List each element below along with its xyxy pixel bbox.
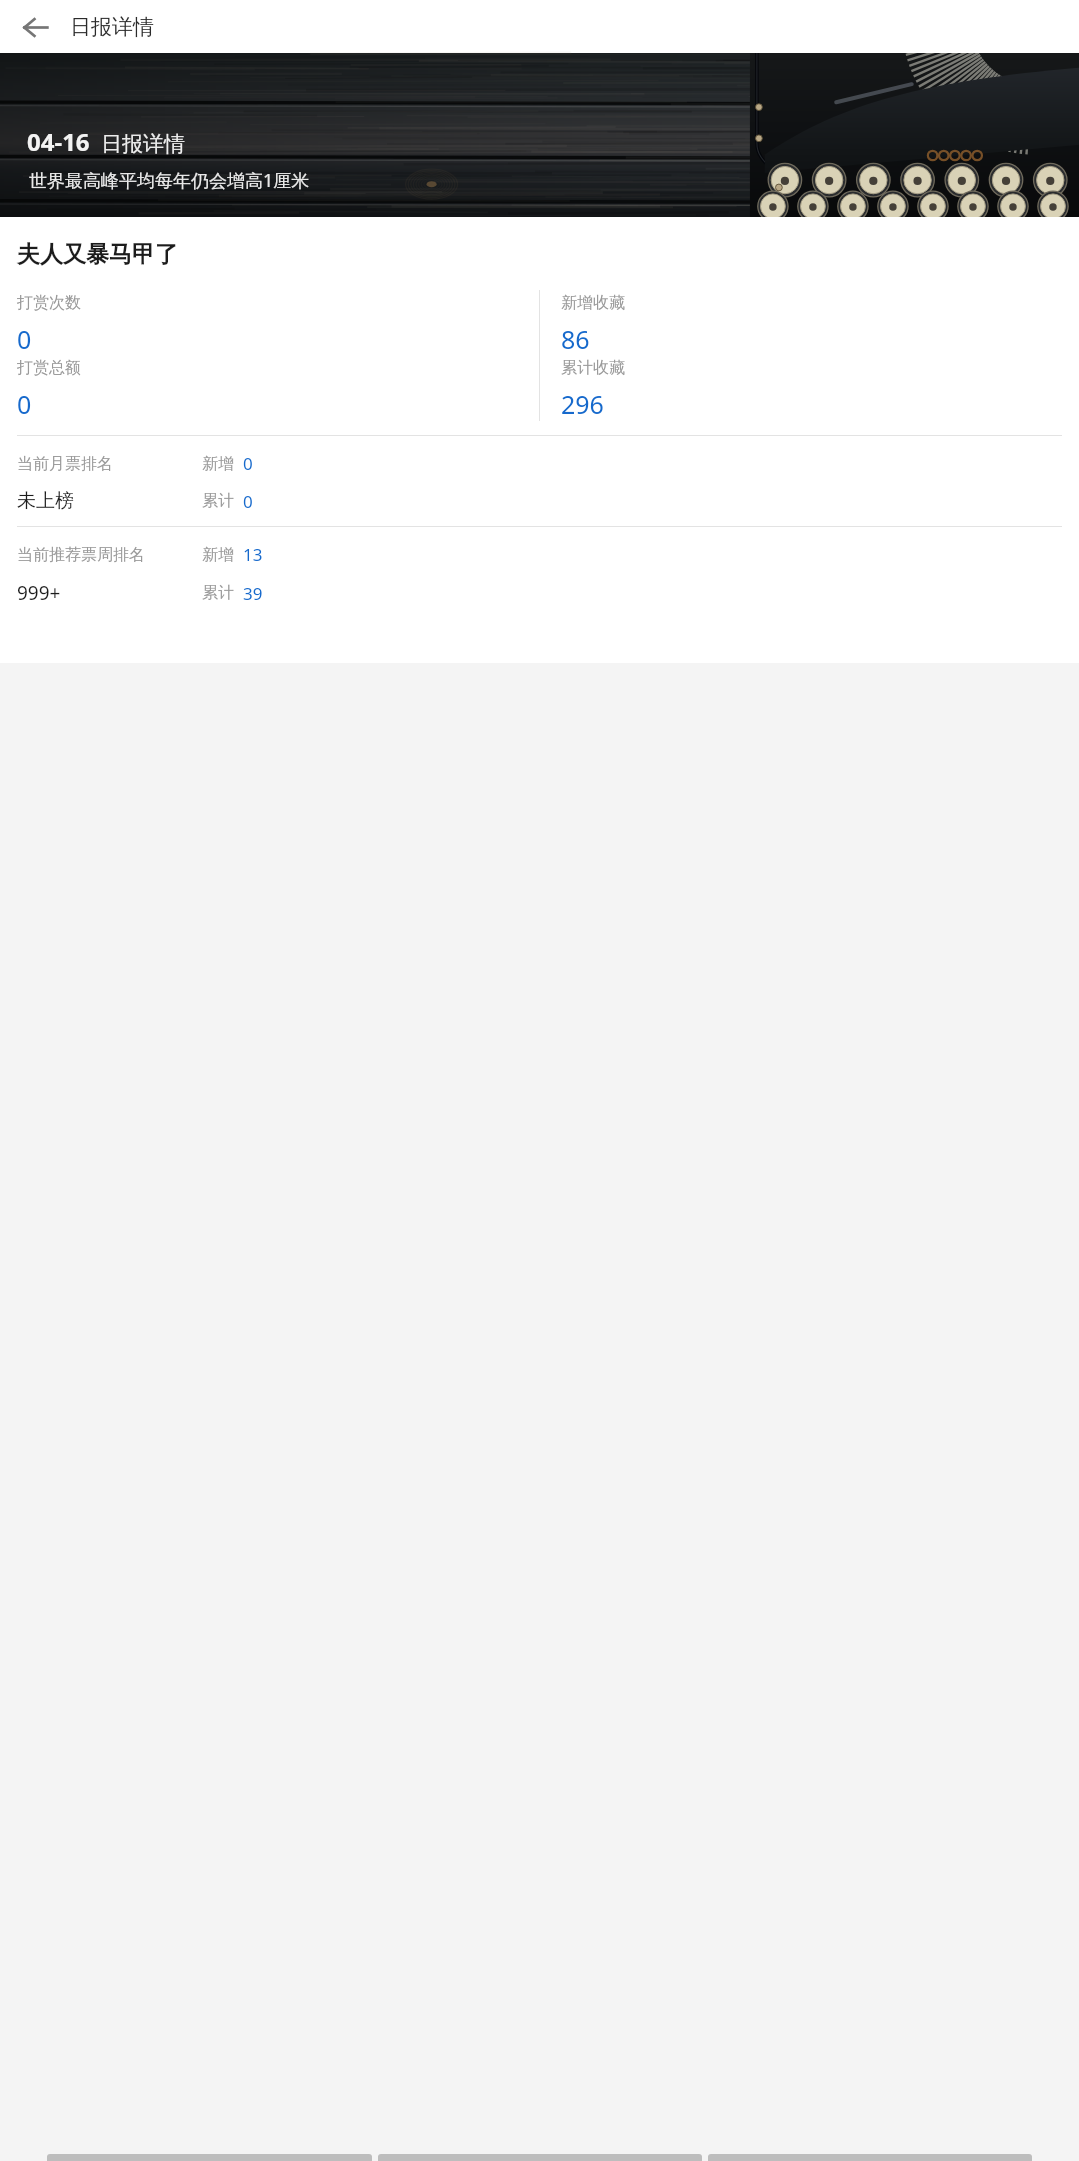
staticText: 04-16 bbox=[27, 125, 90, 158]
staticText: 累计 bbox=[202, 583, 234, 603]
staticText: 13 bbox=[243, 543, 263, 566]
staticText: 当前推荐票周排名 bbox=[17, 545, 202, 565]
staticText: 打赏次数 bbox=[17, 293, 81, 313]
button[interactable]: 当前推荐票周排名 bbox=[0, 527, 1079, 619]
staticText: 999+ bbox=[17, 580, 202, 606]
staticText: 新增 bbox=[202, 545, 234, 565]
staticText: 未上榜 bbox=[17, 489, 202, 513]
button[interactable]: 新增收藏 bbox=[540, 290, 1079, 355]
staticText: 新增收藏 bbox=[561, 293, 625, 313]
staticText: 296 bbox=[561, 387, 604, 421]
button[interactable]: 累计收藏 bbox=[540, 355, 1079, 421]
staticText: 累计收藏 bbox=[561, 358, 625, 378]
staticText: 86 bbox=[561, 322, 590, 355]
staticText: 日报详情 bbox=[70, 14, 154, 40]
staticText: 日报详情 bbox=[101, 131, 185, 157]
staticText: 打赏总额 bbox=[17, 358, 81, 378]
staticText: 累计 bbox=[202, 491, 234, 511]
staticText: 0 bbox=[243, 452, 253, 475]
button[interactable]: 当前月票排名 bbox=[0, 436, 1079, 526]
staticText: 新增 bbox=[202, 454, 234, 474]
button[interactable]: 打赏总额 bbox=[0, 355, 539, 421]
staticText: 当前月票排名 bbox=[17, 454, 202, 474]
staticText: 39 bbox=[243, 582, 263, 605]
staticText: 夫人又暴马甲了 bbox=[17, 240, 178, 269]
button[interactable]: Back bbox=[11, 3, 59, 51]
staticText: 0 bbox=[17, 322, 32, 355]
staticText: 0 bbox=[17, 387, 32, 421]
button[interactable]: 打赏次数 bbox=[0, 290, 539, 355]
staticText: 0 bbox=[243, 490, 253, 513]
staticText: 世界最高峰平均每年仍会增高1厘米 bbox=[29, 168, 310, 193]
